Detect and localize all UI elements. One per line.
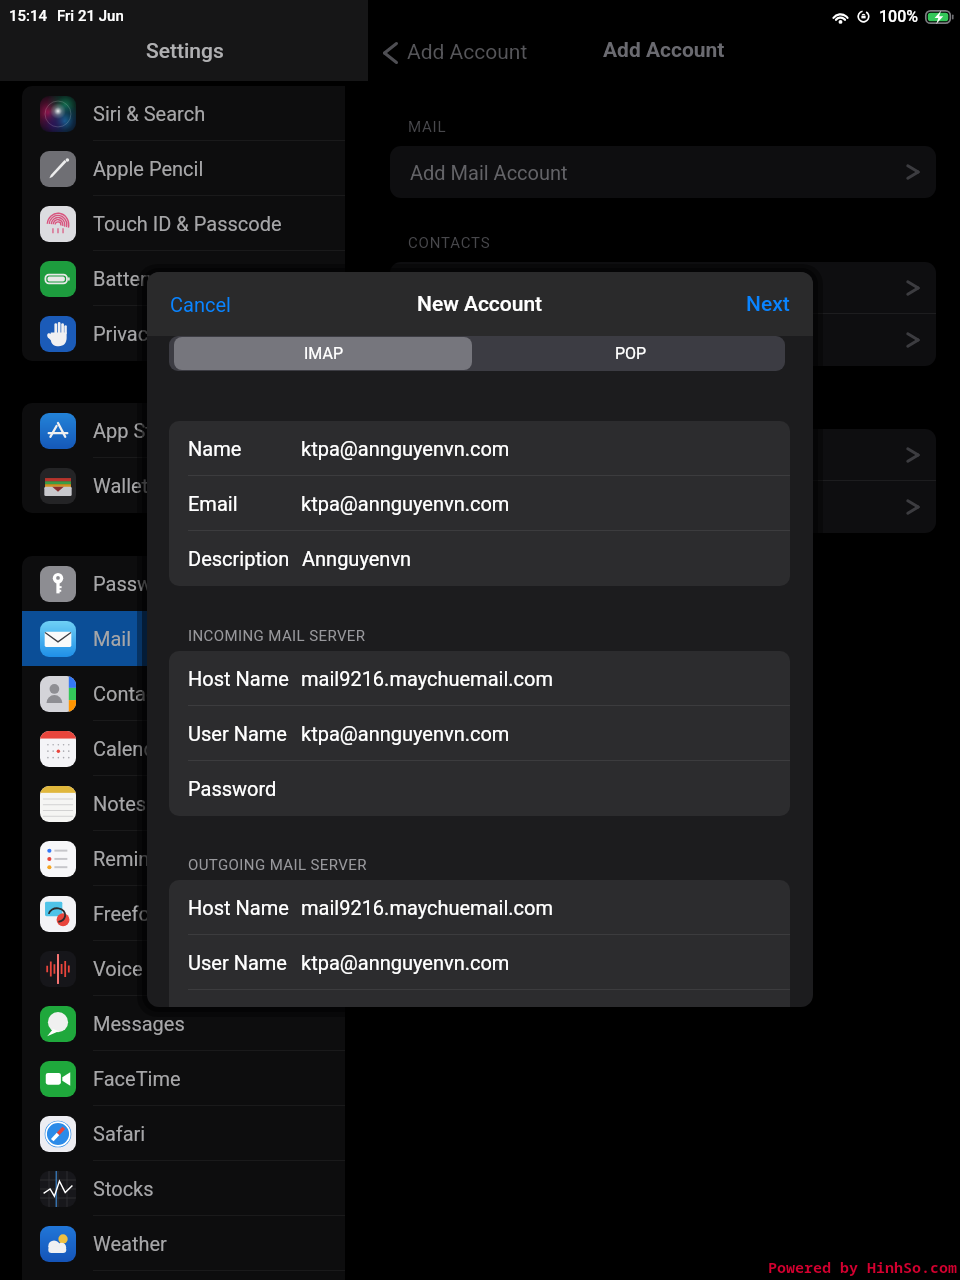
button[interactable]: Freeform [22, 886, 345, 941]
button[interactable]: Notes [22, 776, 345, 831]
staticText: Weather [93, 1232, 167, 1255]
staticText: Description [188, 547, 290, 570]
staticText: Stocks [93, 1177, 154, 1200]
button[interactable]: Back to Add Account [379, 36, 532, 69]
staticText: Add Account [603, 38, 725, 63]
button[interactable]: Touch ID & Passcode [22, 196, 345, 251]
staticText: Next [746, 292, 790, 317]
button[interactable]: POP [482, 337, 780, 370]
staticText: CONTACTS [408, 234, 491, 252]
button[interactable]: App Store [22, 403, 345, 458]
staticText: Password [188, 777, 277, 800]
staticText: Settings [146, 39, 224, 64]
button[interactable]: Privacy [22, 306, 345, 361]
staticText: Powered by HinhSo.com [768, 1257, 958, 1277]
button[interactable]: Email [169, 476, 790, 531]
button[interactable]: Next [723, 278, 813, 331]
button[interactable]: Host Name [169, 880, 790, 935]
staticText: Wallet [93, 474, 149, 497]
button[interactable]: Safari [22, 1106, 345, 1161]
button[interactable]: Contacts [22, 666, 345, 721]
staticText: User Name [188, 722, 287, 745]
button[interactable]: Name [169, 421, 790, 476]
staticText: Host Name [188, 896, 289, 919]
staticText: Mail [93, 627, 132, 650]
staticText: Add Account [407, 40, 528, 65]
staticText: Freeform [93, 902, 175, 925]
button[interactable]: Calendar [22, 721, 345, 776]
button[interactable]: FaceTime [22, 1051, 345, 1106]
staticText: IMAP [304, 344, 343, 363]
staticText: mail9216.maychuemail.com [301, 667, 553, 690]
button[interactable]: Apple Pencil [22, 141, 345, 196]
button[interactable] [390, 429, 936, 481]
staticText: Calendar [93, 737, 173, 760]
staticText: App Store [93, 419, 181, 442]
button[interactable]: IMAP [174, 337, 472, 370]
staticText: Passwords [93, 572, 192, 595]
staticText: Fri 21 Jun [57, 7, 124, 25]
staticText: Privacy [93, 322, 158, 345]
staticText: Annguyenvn [302, 547, 412, 570]
button[interactable]: Voice Memos [22, 941, 345, 996]
button[interactable]: Stocks [22, 1161, 345, 1216]
staticText: Siri & Search [93, 102, 206, 125]
staticText: ktpa@annguyenvn.com [301, 951, 510, 974]
staticText: INCOMING MAIL SERVER [188, 627, 366, 645]
staticText: Email [188, 492, 238, 515]
staticText: 15:14 [9, 7, 48, 25]
staticText: Notes [93, 792, 147, 815]
button[interactable]: Description [169, 531, 790, 586]
staticText: MAIL [408, 118, 447, 136]
button[interactable] [390, 481, 936, 533]
staticText: Battery [93, 267, 157, 290]
staticText: mail9216.maychuemail.com [301, 896, 553, 919]
button[interactable]: Add Mail Account [390, 146, 936, 198]
button[interactable]: Siri & Search [22, 86, 345, 141]
staticText: New Account [417, 292, 543, 317]
staticText: Safari [93, 1122, 146, 1145]
button[interactable]: Mail [22, 611, 345, 666]
staticText: User Name [188, 951, 287, 974]
staticText: Host Name [188, 667, 289, 690]
staticText: Add Mail Account [410, 161, 568, 184]
button[interactable] [390, 262, 936, 314]
staticText: Apple Pencil [93, 157, 204, 180]
button[interactable]: Battery [22, 251, 345, 306]
staticText: Name [188, 437, 242, 460]
staticText: Voice Memos [93, 957, 215, 980]
button[interactable]: User Name [169, 706, 790, 761]
staticText: Touch ID & Passcode [93, 212, 282, 235]
button[interactable]: Weather [22, 1216, 345, 1271]
staticText: POP [615, 344, 647, 363]
button[interactable]: User Name [169, 935, 790, 990]
staticText: FaceTime [93, 1067, 181, 1090]
staticText: Reminders [93, 847, 189, 870]
staticText: ktpa@annguyenvn.com [301, 722, 510, 745]
staticText: OUTGOING MAIL SERVER [188, 856, 367, 874]
button[interactable]: Messages [22, 996, 345, 1051]
staticText: 100% [879, 7, 919, 26]
staticText: ktpa@annguyenvn.com [301, 437, 510, 460]
button[interactable]: Host Name [169, 651, 790, 706]
button[interactable]: Passwords [22, 556, 345, 611]
button[interactable]: Wallet [22, 458, 345, 513]
button[interactable]: Reminders [22, 831, 345, 886]
button[interactable]: Cancel [147, 279, 254, 330]
staticText: Contacts [93, 682, 174, 705]
button[interactable]: Password [169, 761, 790, 816]
staticText: ktpa@annguyenvn.com [301, 492, 510, 515]
button[interactable] [390, 314, 936, 366]
staticText: Messages [93, 1012, 185, 1035]
staticText: Cancel [170, 293, 231, 316]
